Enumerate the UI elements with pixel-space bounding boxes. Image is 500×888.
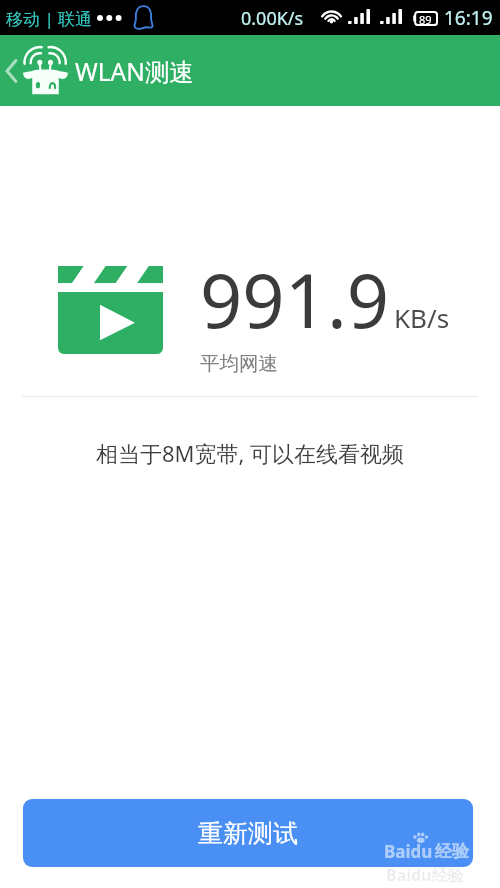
staticText: Baidu: [384, 840, 433, 863]
staticText: 89: [419, 12, 432, 27]
staticText: 991.9: [200, 249, 390, 350]
staticText: 相当于8M宽带, 可以在线看视频: [0, 438, 500, 468]
staticText: WLAN测速: [75, 55, 194, 88]
staticText: Baidu经验: [386, 864, 464, 886]
staticText: KB/s: [394, 300, 450, 335]
staticText: 0.00K/s: [241, 6, 304, 31]
staticText: 经验: [435, 841, 469, 862]
button[interactable]: Back: [0, 35, 46, 106]
staticText: 重新测试: [198, 818, 298, 849]
button[interactable]: 重新测试: [23, 799, 473, 867]
staticText: 移动 | 联通: [6, 7, 93, 30]
staticText: 16:19: [444, 5, 493, 31]
staticText: 平均网速: [200, 351, 278, 376]
